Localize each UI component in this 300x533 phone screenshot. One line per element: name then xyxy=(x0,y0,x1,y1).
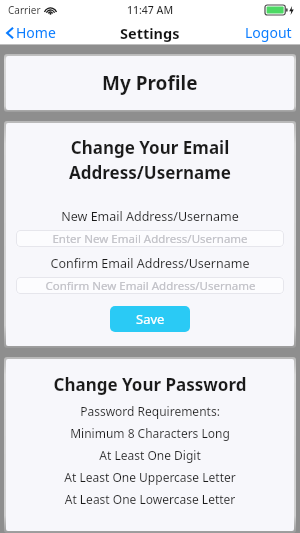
button[interactable]: Enter New Email Address/Username xyxy=(16,230,284,247)
staticText: Save xyxy=(136,310,165,328)
staticText: At Least One Digit xyxy=(6,447,294,463)
staticText: 11:47 AM xyxy=(127,3,174,17)
staticText: Change Your Password xyxy=(6,373,294,396)
button[interactable]: Confirm New Email Address/Username xyxy=(16,277,284,294)
staticText: Change Your Email xyxy=(6,136,294,159)
staticText: Enter New Email Address/Username xyxy=(52,231,248,247)
staticText: Address/Username xyxy=(6,161,294,184)
staticText: Home xyxy=(16,23,56,42)
staticText: New Email Address/Username xyxy=(6,208,294,225)
button[interactable]: Home xyxy=(0,20,64,45)
staticText: Carrier xyxy=(8,3,41,17)
button[interactable]: Logout xyxy=(237,20,300,45)
staticText: Password Requirements: xyxy=(6,403,294,419)
staticText: At Least One Uppercase Letter xyxy=(6,469,294,485)
staticText: Settings xyxy=(120,23,180,43)
button[interactable]: My Profile xyxy=(0,54,300,112)
button[interactable]: Save xyxy=(110,306,190,332)
staticText: At Least One Lowercase Letter xyxy=(6,491,294,507)
staticText: Confirm New Email Address/Username xyxy=(45,278,256,294)
staticText: My Profile xyxy=(102,70,198,96)
staticText: Logout xyxy=(245,23,292,42)
staticText: Confirm Email Address/Username xyxy=(6,255,294,272)
staticText: Minimum 8 Characters Long xyxy=(6,425,294,441)
